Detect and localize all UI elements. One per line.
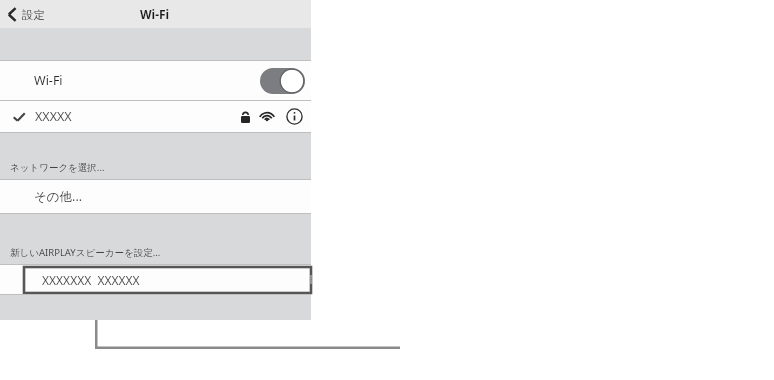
- button[interactable]: Connected: [0, 101, 311, 132]
- other: Connected: [13, 111, 25, 123]
- staticText: Wi-Fi: [140, 6, 170, 22]
- staticText: その他...: [34, 188, 83, 205]
- button[interactable]: Wi-Fi on: [260, 68, 305, 94]
- button[interactable]: XXXXXXX XXXXXX: [0, 265, 311, 294]
- staticText: 設定: [22, 8, 45, 22]
- staticText: XXXXX: [35, 108, 72, 125]
- staticText: 新しいAIRPLAYスピーカーを設定...: [10, 246, 161, 259]
- button[interactable]: Wi-Fi: [0, 61, 311, 100]
- staticText: XXXXXXX XXXXXX: [42, 272, 140, 288]
- button[interactable]: その他...: [0, 180, 311, 213]
- button[interactable]: More info: [286, 108, 303, 125]
- staticText: Wi-Fi: [34, 72, 63, 89]
- other: Back: [7, 7, 18, 22]
- button[interactable]: Back: [0, 4, 51, 25]
- staticText: ネットワークを選択...: [10, 161, 105, 174]
